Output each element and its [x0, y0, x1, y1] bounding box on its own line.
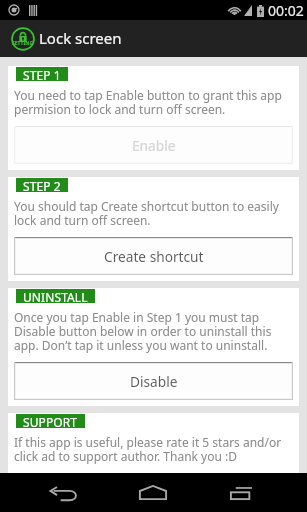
- staticText: SETTING: [12, 40, 34, 47]
- button[interactable]: Back: [38, 473, 90, 512]
- staticText: If this app is useful, please rate it 5 …: [14, 434, 293, 465]
- button[interactable]: Recent apps: [215, 473, 267, 512]
- staticText: STEP 2: [23, 178, 61, 192]
- staticText: SUPPORT: [23, 414, 78, 428]
- staticText: Create shortcut: [104, 247, 204, 266]
- staticText: UNINSTALL: [23, 289, 88, 303]
- button[interactable]: Home: [127, 473, 179, 512]
- staticText: Enable: [132, 136, 176, 155]
- staticText: 00:02: [268, 1, 304, 20]
- staticText: You should tap Create shortcut button to…: [14, 198, 293, 229]
- staticText: Lock screen: [39, 28, 122, 48]
- staticText: STEP 1: [23, 67, 61, 81]
- staticText: Disable: [130, 372, 178, 391]
- staticText: Once you tap Enable in Step 1 you must t…: [14, 309, 293, 354]
- button[interactable]: Disable: [14, 362, 293, 400]
- button[interactable]: Create shortcut: [14, 237, 293, 275]
- button[interactable]: Enable: [14, 126, 293, 164]
- staticText: You need to tap Enable button to grant t…: [14, 87, 293, 118]
